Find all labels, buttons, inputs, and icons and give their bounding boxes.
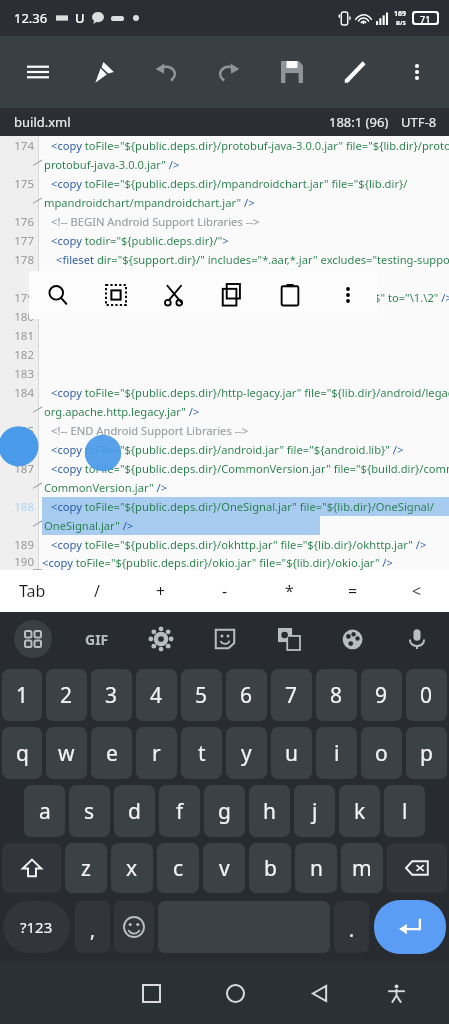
button[interactable]: q	[2, 727, 42, 779]
button[interactable]: r	[136, 727, 177, 779]
staticText: 12.36	[14, 9, 48, 27]
staticText: s	[84, 797, 95, 826]
button[interactable]: <	[385, 570, 449, 612]
button[interactable]: +	[129, 570, 193, 612]
button[interactable]: Translate	[257, 628, 321, 650]
button[interactable]: v	[203, 843, 245, 893]
button[interactable]: 7	[271, 669, 312, 721]
button[interactable]: b	[249, 843, 291, 893]
button[interactable]: 1	[2, 669, 42, 721]
button[interactable]: Home	[193, 962, 277, 1024]
button[interactable]: Accessibility	[361, 962, 432, 1024]
button[interactable]: Backspace	[387, 843, 447, 893]
staticText: 181	[0, 328, 34, 344]
button[interactable]: -	[193, 570, 257, 612]
button[interactable]: f	[159, 785, 200, 837]
button[interactable]: i	[316, 727, 357, 779]
staticText: b	[264, 854, 277, 883]
button[interactable]: n	[295, 843, 337, 893]
button[interactable]: l	[384, 785, 425, 837]
button[interactable]: 6	[226, 669, 267, 721]
button[interactable]: GIF	[65, 630, 129, 649]
button[interactable]: a	[24, 785, 65, 837]
button[interactable]: Undo	[145, 51, 187, 93]
button[interactable]: Pin	[82, 51, 124, 93]
staticText: l	[402, 797, 408, 826]
staticText: 3	[105, 681, 118, 710]
button[interactable]: Stickers	[193, 628, 257, 650]
staticText: 177	[0, 233, 34, 249]
staticText: r	[152, 739, 161, 768]
button[interactable]: y	[226, 727, 267, 779]
button[interactable]: z	[65, 843, 107, 893]
staticText: 2	[60, 681, 73, 710]
button[interactable]: =	[321, 570, 385, 612]
button[interactable]: More options	[397, 52, 437, 92]
button[interactable]: /	[65, 570, 129, 612]
button[interactable]: 9	[361, 669, 402, 721]
button[interactable]: 3	[91, 669, 132, 721]
staticText: 7	[285, 681, 298, 710]
button[interactable]: u	[271, 727, 312, 779]
staticText: 190	[0, 554, 34, 570]
staticText: 180	[0, 309, 34, 325]
button[interactable]: Theme	[321, 628, 385, 650]
button[interactable]: h	[249, 785, 290, 837]
staticText: j	[312, 797, 318, 826]
button[interactable]: Redo	[208, 51, 250, 93]
staticText: /	[94, 580, 100, 602]
button[interactable]: g	[204, 785, 245, 837]
button[interactable]: Back	[277, 962, 361, 1024]
button[interactable]: Save	[271, 51, 313, 93]
button[interactable]: Tab	[0, 570, 65, 612]
button[interactable]: x	[111, 843, 153, 893]
button[interactable]: ?123	[3, 901, 70, 953]
button[interactable]: c	[157, 843, 199, 893]
button[interactable]: 2	[46, 669, 87, 721]
button[interactable]: Edit	[334, 51, 376, 93]
button[interactable]: 4	[136, 669, 177, 721]
button[interactable]: 5	[181, 669, 222, 721]
button[interactable]: 0	[406, 669, 447, 721]
button[interactable]: m	[341, 843, 383, 893]
button[interactable]: w	[46, 727, 87, 779]
staticText: a	[39, 797, 51, 826]
staticText: 187	[0, 461, 34, 477]
button[interactable]: More	[319, 271, 377, 319]
button[interactable]: Recents	[109, 962, 193, 1024]
button[interactable]: Settings	[129, 628, 193, 650]
button[interactable]: k	[339, 785, 380, 837]
button[interactable]: Shift	[2, 843, 61, 893]
button[interactable]: Select all	[87, 271, 145, 319]
staticText: n	[310, 854, 323, 883]
staticText: 1	[16, 681, 29, 710]
button[interactable]: *	[257, 570, 321, 612]
staticText: y	[241, 739, 252, 768]
button[interactable]: Menu	[16, 50, 60, 94]
button[interactable]: j	[294, 785, 335, 837]
button[interactable]: o	[361, 727, 402, 779]
button[interactable]: Voice input	[385, 628, 449, 650]
button[interactable]: Search	[29, 271, 87, 319]
staticText: <copy toFile="${public.deps.dir}/mpandro…	[51, 176, 408, 191]
button[interactable]: s	[69, 785, 110, 837]
staticText: Tab	[19, 580, 46, 602]
button[interactable]: d	[114, 785, 155, 837]
staticText: <!-- END Android Support Libraries -->	[51, 423, 249, 438]
button[interactable]: e	[91, 727, 132, 779]
button[interactable]: Enter	[374, 900, 446, 954]
button[interactable]: 8	[316, 669, 357, 721]
button[interactable]: Paste	[261, 271, 319, 319]
staticText: <copy todir="${public.deps.dir}/">	[51, 233, 229, 248]
button[interactable]: p	[406, 727, 447, 779]
button[interactable]: Apps	[14, 620, 52, 658]
button[interactable]: ,	[75, 901, 110, 953]
button[interactable]: .	[334, 901, 369, 953]
button[interactable]: Emoji	[114, 901, 154, 953]
button[interactable]: t	[181, 727, 222, 779]
button[interactable]: Copy	[203, 271, 261, 319]
staticText: u	[285, 739, 298, 768]
button[interactable]: Cut	[145, 271, 203, 319]
staticText: q	[16, 739, 29, 768]
